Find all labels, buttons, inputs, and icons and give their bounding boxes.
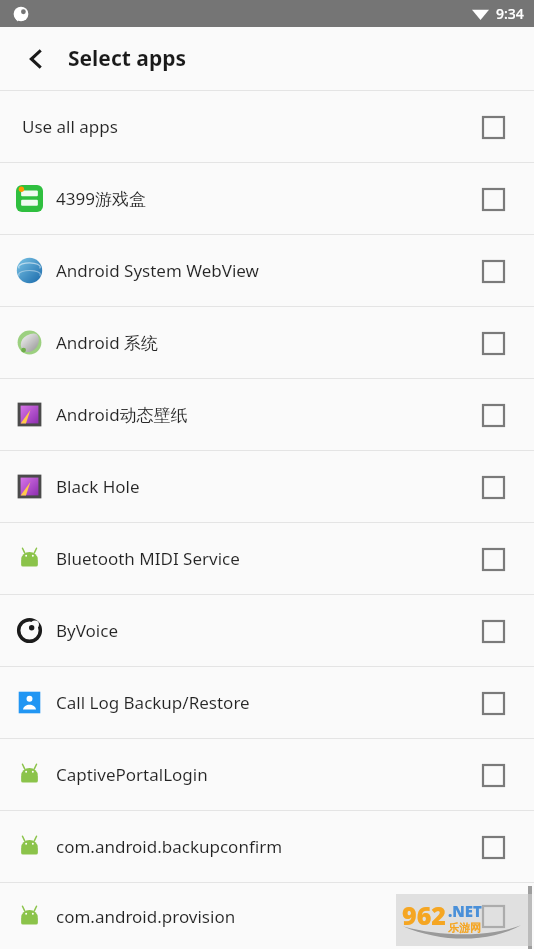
staticText: Use all apps [22,115,422,138]
button[interactable]: CaptivePortalLogin [0,739,534,810]
button[interactable]: Select com.android.backupconfirm [476,830,510,864]
staticText: Black Hole [56,475,456,498]
button[interactable]: Select Bluetooth MIDI Service [476,542,510,576]
button[interactable]: Select Android 系统 [476,326,510,360]
button[interactable]: Black Hole [0,451,534,522]
button[interactable]: Select com.android.provision [476,899,510,933]
button[interactable]: com.android.backupconfirm [0,811,534,882]
staticText: Android 系统 [56,331,456,354]
staticText: Call Log Backup/Restore [56,691,456,714]
staticText: Select apps [68,44,186,73]
button[interactable]: Select Android System WebView [476,254,510,288]
button[interactable]: Select Black Hole [476,470,510,504]
staticText: .NET [448,901,482,921]
button[interactable]: Back [18,41,54,77]
button[interactable]: Select Android动态壁纸 [476,398,510,432]
button[interactable]: Select ByVoice [476,614,510,648]
button[interactable]: Select Use all apps [476,110,510,144]
button[interactable]: Select CaptivePortalLogin [476,758,510,792]
button[interactable]: Use all apps [0,91,534,162]
staticText: 乐游网 [448,921,481,935]
button[interactable]: Bluetooth MIDI Service [0,523,534,594]
staticText: com.android.provision [56,905,456,928]
staticText: CaptivePortalLogin [56,763,456,786]
button[interactable]: Select 4399游戏盒 [476,182,510,216]
staticText: 4399游戏盒 [56,187,456,210]
button[interactable]: Android 系统 [0,307,534,378]
staticText: com.android.backupconfirm [56,835,456,858]
staticText: 9:34 [496,4,524,23]
button[interactable]: ByVoice [0,595,534,666]
staticText: Android System WebView [56,259,456,282]
button[interactable]: Select Call Log Backup/Restore [476,686,510,720]
button[interactable]: com.android.provision [0,883,534,949]
button[interactable]: Android动态壁纸 [0,379,534,450]
staticText: Android动态壁纸 [56,403,456,426]
button[interactable]: 4399游戏盒 [0,163,534,234]
button[interactable]: Android System WebView [0,235,534,306]
button[interactable]: Call Log Backup/Restore [0,667,534,738]
staticText: ByVoice [56,619,456,642]
staticText: 962 [402,898,446,932]
staticText: Bluetooth MIDI Service [56,547,456,570]
